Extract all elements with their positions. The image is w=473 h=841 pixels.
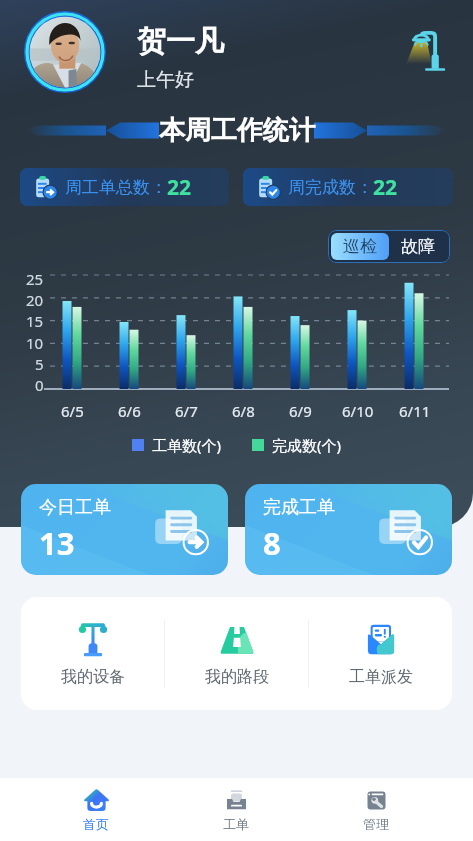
button[interactable]: 完成工单 xyxy=(245,484,452,575)
staticText: 20 xyxy=(26,290,44,310)
staticText: 13 xyxy=(39,522,75,564)
staticText: 我的路段 xyxy=(205,667,269,687)
button[interactable]: 管理 xyxy=(306,781,446,839)
button[interactable]: 周工单总数： xyxy=(20,168,229,206)
button[interactable]: 工单 xyxy=(166,781,306,839)
staticText: 6/7 xyxy=(175,401,198,421)
staticText: 工单 xyxy=(223,816,249,832)
button[interactable]: Street lamp status xyxy=(405,28,451,74)
button[interactable]: 今日工单 xyxy=(21,484,228,575)
button[interactable]: 故障 xyxy=(389,233,447,260)
staticText: 上午好 xyxy=(137,68,194,92)
staticText: 巡检 xyxy=(343,236,377,257)
button[interactable]: 首页 xyxy=(26,781,166,839)
staticText: 管理 xyxy=(363,816,389,832)
button[interactable]: 我的路段 xyxy=(165,613,308,695)
staticText: 周完成数： xyxy=(288,177,373,198)
staticText: 15 xyxy=(26,311,44,331)
staticText: 完成工单 xyxy=(263,496,335,519)
staticText: 6/8 xyxy=(232,401,255,421)
button[interactable]: Profile avatar xyxy=(24,11,106,93)
staticText: 10 xyxy=(26,333,44,353)
button[interactable]: 工单派发 xyxy=(309,613,452,695)
staticText: 周工单总数： xyxy=(65,177,167,198)
button[interactable]: 我的设备 xyxy=(21,613,164,695)
staticText: 22 xyxy=(167,173,192,202)
staticText: 0 xyxy=(35,375,44,395)
staticText: 我的设备 xyxy=(61,667,125,687)
staticText: 6/9 xyxy=(289,401,312,421)
staticText: 6/5 xyxy=(61,401,84,421)
staticText: 8 xyxy=(263,522,281,564)
staticText: 工单数(个) xyxy=(152,435,222,455)
staticText: 本周工作统计 xyxy=(159,114,315,147)
staticText: 25 xyxy=(26,269,44,289)
button[interactable]: 巡检 xyxy=(331,233,389,260)
staticText: 首页 xyxy=(83,816,109,832)
staticText: 5 xyxy=(35,354,44,374)
staticText: 今日工单 xyxy=(39,496,111,519)
button[interactable]: 周完成数： xyxy=(243,168,453,206)
staticText: 6/11 xyxy=(399,401,431,421)
staticText: 贺一凡 xyxy=(137,23,224,60)
staticText: 故障 xyxy=(401,236,435,257)
staticText: 完成数(个) xyxy=(272,435,342,455)
staticText: 工单派发 xyxy=(349,667,413,687)
staticText: 6/10 xyxy=(342,401,374,421)
staticText: 22 xyxy=(373,173,398,202)
staticText: 6/6 xyxy=(118,401,141,421)
